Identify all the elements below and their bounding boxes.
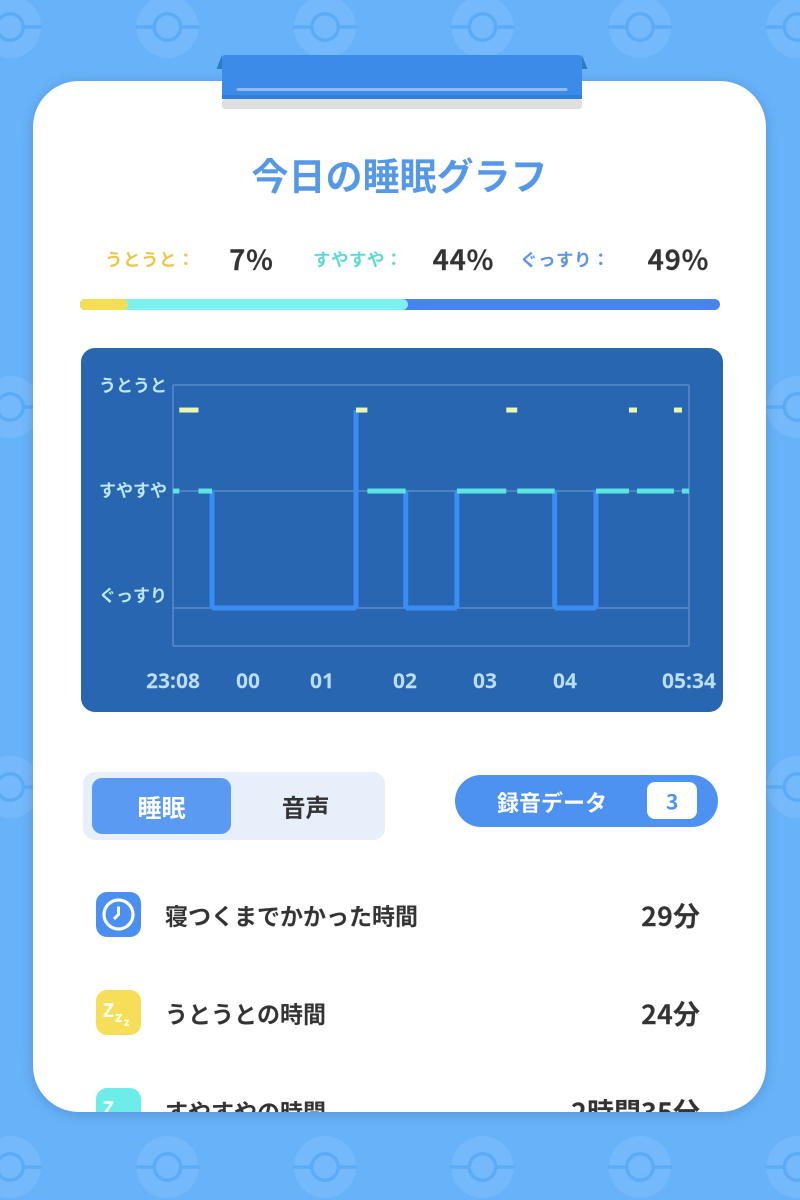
staticText: 01 <box>310 666 334 694</box>
staticText: Z <box>103 1095 114 1121</box>
staticText: 録音データ <box>497 785 607 817</box>
staticText: 睡眠 <box>137 789 185 823</box>
staticText: ぐっすり： <box>520 245 610 271</box>
staticText: すやすや <box>99 477 167 501</box>
staticText: うとうとの時間 <box>165 996 326 1029</box>
staticText: うとうと <box>99 372 167 396</box>
staticText: 49% <box>647 238 708 278</box>
staticText: 7% <box>229 238 273 278</box>
staticText: ぐっすり <box>99 582 167 606</box>
staticText: 00 <box>236 666 260 694</box>
staticText: 44% <box>432 238 493 278</box>
staticText: z <box>124 1014 129 1029</box>
staticText: 23:08 <box>146 666 200 694</box>
staticText: 05:34 <box>662 666 716 694</box>
staticText: 今日の睡眠グラフ <box>251 147 547 201</box>
staticText: 3 <box>666 785 678 816</box>
staticText: 03 <box>473 666 497 694</box>
staticText: Z <box>103 997 114 1023</box>
staticText: 02 <box>393 666 417 694</box>
staticText: すやすや： <box>313 245 403 271</box>
staticText: z <box>124 1112 129 1127</box>
staticText: 寝つくまでかかった時間 <box>165 898 418 931</box>
staticText: 2時間35分 <box>571 1091 700 1130</box>
staticText: z <box>115 1006 122 1026</box>
staticText: 04 <box>553 666 577 694</box>
staticText: うとうと： <box>105 245 195 271</box>
button[interactable]: 寝つくまでかかった時間 <box>96 871 700 969</box>
button[interactable]: 音声 <box>233 778 378 834</box>
button[interactable]: 睡眠 <box>92 778 231 834</box>
staticText: すやすやの時間 <box>165 1094 326 1127</box>
staticText: 音声 <box>281 789 329 823</box>
button[interactable]: Z <box>96 1067 700 1165</box>
staticText: 29分 <box>641 895 700 934</box>
button[interactable]: Z <box>96 969 700 1067</box>
staticText: 24分 <box>641 993 700 1032</box>
button[interactable]: 録音データ <box>455 775 718 827</box>
staticText: z <box>115 1104 122 1124</box>
